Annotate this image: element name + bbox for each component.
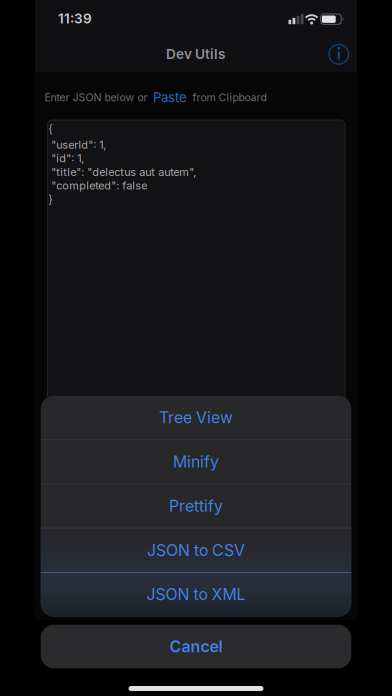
button[interactable]: Info xyxy=(321,36,357,72)
button[interactable]: Cancel xyxy=(41,625,351,668)
staticText: Enter JSON below or xyxy=(44,91,150,104)
staticText: "userId": 1, xyxy=(48,138,106,151)
button[interactable]: JSON to XML xyxy=(41,573,351,616)
staticText: "title": "delectus aut autem", xyxy=(48,165,196,179)
staticText: 11:39 xyxy=(58,10,92,27)
button[interactable]: Paste xyxy=(153,89,187,105)
staticText: } xyxy=(48,193,53,206)
staticText: Paste xyxy=(153,89,187,105)
staticText: Minify xyxy=(173,452,219,471)
button[interactable]: Prettify xyxy=(41,484,351,528)
button[interactable]: JSON to CSV xyxy=(41,528,351,572)
staticText: { xyxy=(48,122,53,135)
button[interactable]: Minify xyxy=(41,440,351,483)
button[interactable]: Tree View xyxy=(41,396,351,439)
staticText: "id": 1, xyxy=(48,152,84,165)
staticText: Prettify xyxy=(169,496,223,515)
staticText: JSON to CSV xyxy=(147,541,245,560)
staticText: Dev Utils xyxy=(166,46,225,62)
staticText: Tree View xyxy=(159,408,233,427)
staticText: JSON to XML xyxy=(146,585,245,604)
staticText: from Clipboard xyxy=(189,91,266,104)
staticText: "completed": false xyxy=(48,179,147,192)
staticText: Cancel xyxy=(169,637,222,656)
